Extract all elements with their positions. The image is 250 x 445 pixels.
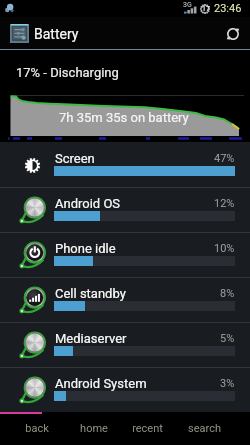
staticText: 5% xyxy=(220,332,235,345)
staticText: 8% xyxy=(220,287,235,300)
staticText: 7h 35m 35s on battery xyxy=(59,110,189,125)
staticText: 17% - Discharging xyxy=(16,65,119,80)
staticText: 47% xyxy=(214,152,235,165)
button[interactable]: Screen xyxy=(0,142,250,187)
staticText: back xyxy=(25,422,49,435)
button[interactable]: back xyxy=(9,412,65,445)
staticText: Screen xyxy=(55,151,95,166)
staticText: recent xyxy=(132,422,163,435)
button[interactable]: Cell standby xyxy=(0,278,250,322)
staticText: 17 xyxy=(202,5,210,13)
button[interactable]: Android System xyxy=(0,368,250,412)
button[interactable]: Phone idle xyxy=(0,233,250,277)
staticText: Phone idle xyxy=(55,241,116,256)
button[interactable]: Battery xyxy=(0,17,250,50)
button[interactable]: recent xyxy=(119,412,175,445)
staticText: home xyxy=(80,422,108,435)
staticText: 12% xyxy=(214,197,235,210)
button[interactable]: Android OS xyxy=(0,188,250,232)
staticText: 10% xyxy=(214,242,235,255)
staticText: 3G xyxy=(183,1,192,9)
staticText: Cell standby xyxy=(55,286,126,301)
staticText: Android OS xyxy=(55,196,121,211)
button[interactable]: home xyxy=(66,412,122,445)
staticText: 3% xyxy=(220,377,235,390)
staticText: Android System xyxy=(55,376,147,391)
staticText: Battery xyxy=(34,26,79,42)
button[interactable]: Refresh xyxy=(216,17,250,50)
staticText: Mediaserver xyxy=(55,331,127,346)
button[interactable]: search xyxy=(176,412,232,445)
button[interactable]: Mediaserver xyxy=(0,323,250,367)
staticText: search xyxy=(188,422,221,435)
staticText: 23:46 xyxy=(214,2,242,15)
